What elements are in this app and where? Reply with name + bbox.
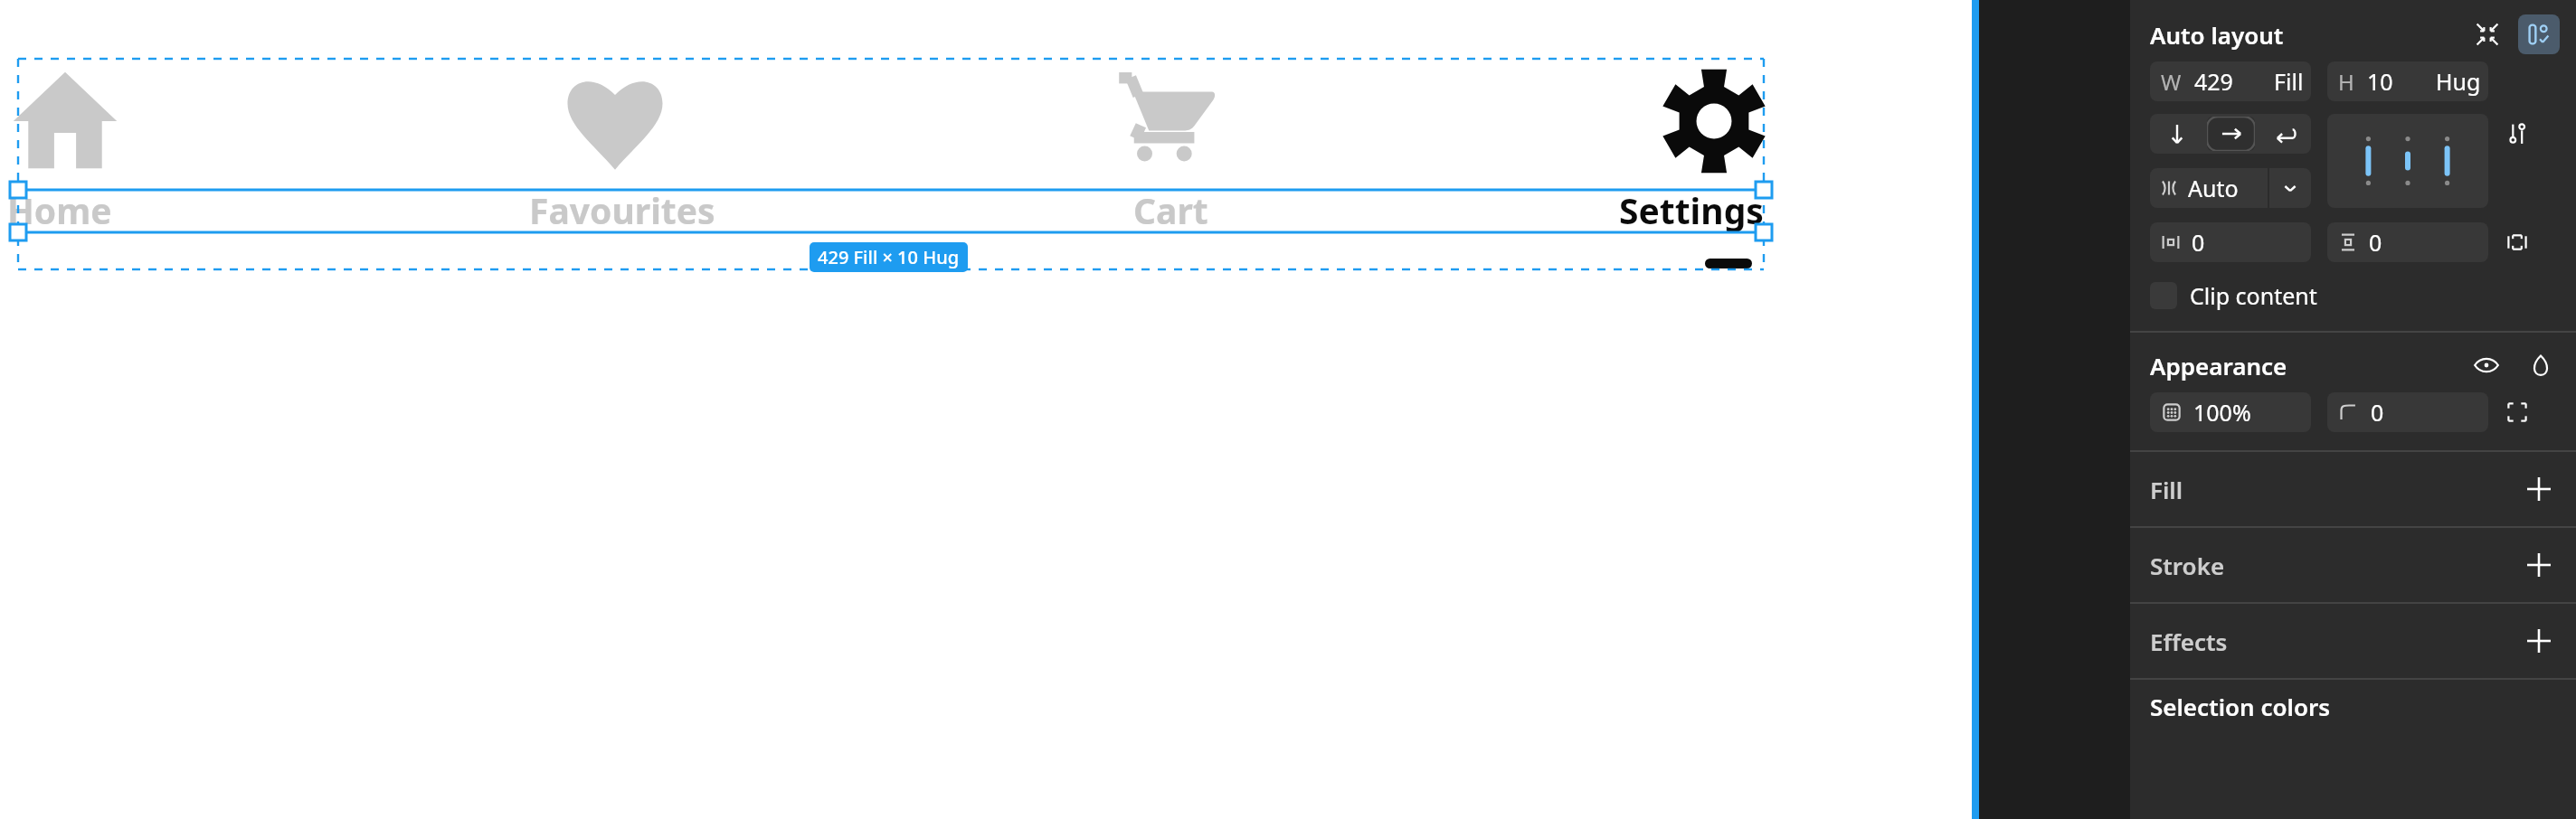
staticText: W [2161, 67, 2182, 97]
button[interactable]: Vertical direction [2153, 117, 2202, 151]
staticText: Appearance [2150, 350, 2287, 381]
button[interactable]: Add Fill [2518, 468, 2560, 510]
staticText: Auto [2188, 173, 2239, 203]
button[interactable]: Auto [2150, 168, 2268, 208]
button[interactable]: Fill [2150, 452, 2560, 526]
button[interactable]: 100% [2150, 392, 2311, 432]
button[interactable]: Alignment [2327, 114, 2488, 208]
staticText: Auto layout [2150, 19, 2284, 51]
staticText: Fill [2274, 66, 2304, 97]
staticText: 0 [2192, 227, 2205, 258]
button[interactable]: Cart [1133, 186, 1208, 233]
staticText: 0 [2369, 227, 2382, 258]
button[interactable]: Favourites [529, 186, 715, 233]
button[interactable]: Independent corners [2497, 392, 2537, 432]
button[interactable]: Settings [1619, 186, 1764, 233]
button[interactable]: Wrap [2260, 117, 2308, 151]
button[interactable]: Add Effects [2518, 620, 2560, 662]
button[interactable]: Home [12, 68, 118, 174]
button[interactable]: 0 [2150, 222, 2311, 262]
button[interactable]: Favourites [562, 68, 668, 174]
staticText: 10 [2367, 66, 2393, 97]
button[interactable]: Advanced layout [2497, 114, 2537, 154]
button[interactable]: Spacing options [2269, 168, 2311, 208]
staticText: Effects [2150, 626, 2228, 657]
button[interactable]: Horizontal direction [2207, 117, 2255, 151]
button[interactable]: 0 [2327, 222, 2488, 262]
button[interactable]: Add Stroke [2518, 544, 2560, 586]
staticText: 100% [2193, 397, 2251, 428]
button[interactable]: Visibility [2467, 346, 2505, 384]
staticText: H [2338, 67, 2354, 97]
staticText: 0 [2371, 397, 2384, 428]
button[interactable]: H [2327, 61, 2488, 101]
staticText: 429 [2194, 66, 2233, 97]
button[interactable]: Effects [2150, 604, 2560, 678]
button[interactable]: Selection colors [2150, 680, 2560, 732]
button[interactable]: Home [7, 186, 112, 233]
staticText: Settings [1619, 186, 1764, 233]
staticText: Fill [2150, 474, 2183, 505]
button[interactable]: Stroke [2150, 528, 2560, 602]
button[interactable]: Blend mode [2522, 346, 2560, 384]
button[interactable]: Clip content [2150, 277, 2576, 315]
button[interactable]: Cart [1109, 68, 1216, 174]
staticText: Cart [1133, 186, 1208, 233]
button[interactable]: Settings [1661, 68, 1767, 174]
button[interactable]: 0 [2327, 392, 2488, 432]
staticText: 429 Fill × 10 Hug [818, 245, 960, 269]
staticText: Stroke [2150, 550, 2225, 581]
staticText: Clip content [2190, 280, 2317, 311]
button[interactable]: W [2150, 61, 2311, 101]
staticText: Favourites [529, 186, 715, 233]
button[interactable]: Auto layout settings [2518, 14, 2560, 54]
staticText: Hug [2436, 66, 2481, 97]
staticText: Home [7, 186, 112, 233]
staticText: Selection colors [2150, 691, 2331, 722]
button[interactable]: Collapse [2469, 16, 2505, 52]
button[interactable]: Individual padding [2497, 222, 2537, 262]
